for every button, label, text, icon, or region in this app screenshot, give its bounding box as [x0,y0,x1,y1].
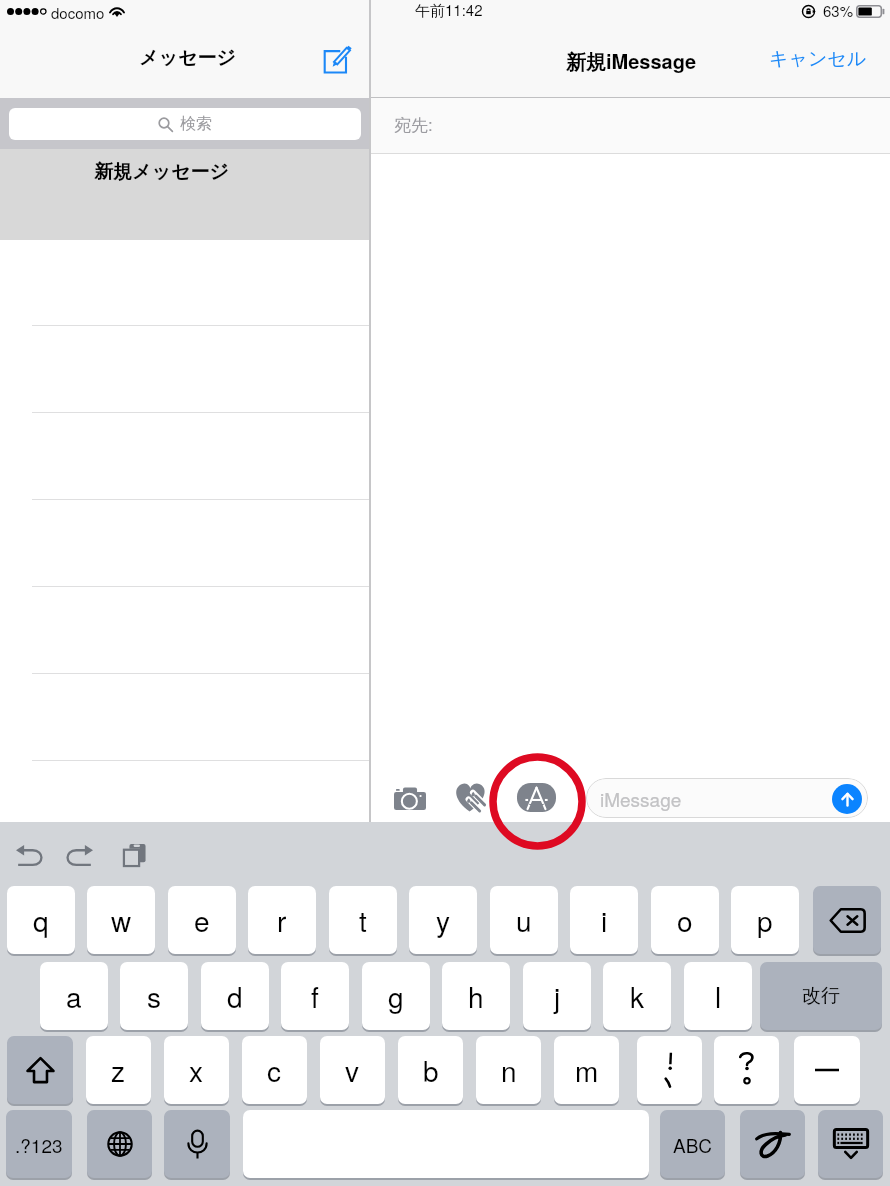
button[interactable]: j [523,962,591,1030]
button[interactable]: 検索 [9,108,361,140]
button[interactable]: o [651,886,719,954]
button[interactable]: Switch keyboard language [87,1110,152,1178]
button[interactable]: ABC [660,1110,725,1178]
button[interactable]: k [603,962,671,1030]
button[interactable]: Shift [7,1036,73,1104]
button[interactable]: Undo [7,836,51,874]
staticText: メッセージ [139,46,236,70]
staticText: x [189,1050,204,1090]
staticText: v [345,1050,360,1090]
button[interactable]: 改行 [760,962,882,1030]
button[interactable]: Exclamation mark [637,1036,702,1104]
staticText: k [630,976,645,1016]
button[interactable]: q [7,886,75,954]
button[interactable]: c [242,1036,307,1104]
staticText: 宛先: [394,111,433,136]
staticText: ABC [673,1131,713,1158]
button[interactable]: w [87,886,155,954]
button[interactable] [0,325,370,412]
button[interactable]: Redo [57,836,101,874]
button[interactable]: r [248,886,316,954]
button[interactable]: a [40,962,108,1030]
button[interactable]: Paste [112,835,156,875]
button[interactable]: f [281,962,349,1030]
staticText: l [715,976,722,1016]
button[interactable]: g [362,962,430,1030]
staticText: z [111,1050,126,1090]
staticText: e [194,900,210,940]
staticText: iMessage [600,785,682,812]
button[interactable]: p [731,886,799,954]
button[interactable]: Question mark [714,1036,779,1104]
staticText: 午前11:42 [415,0,483,21]
staticText: b [423,1050,439,1090]
staticText: .?123 [15,1131,63,1158]
button[interactable]: Send [832,784,862,814]
button[interactable]: h [442,962,510,1030]
button[interactable] [0,149,370,240]
button[interactable]: i [570,886,638,954]
button[interactable]: v [320,1036,385,1104]
staticText: docomo [51,2,105,23]
button[interactable]: u [490,886,558,954]
staticText: a [66,976,82,1016]
staticText: 63% [823,0,854,21]
staticText: キャンセル [769,47,867,71]
button[interactable]: Dictation [164,1110,230,1178]
staticText: c [267,1050,282,1090]
staticText: m [575,1050,599,1090]
button[interactable]: iMessage [586,778,868,818]
button[interactable]: y [409,886,477,954]
button[interactable]: Long vowel mark [794,1036,860,1104]
staticText: 新規メッセージ [94,160,229,184]
staticText: n [501,1050,517,1090]
button[interactable]: Backspace [813,886,881,954]
staticText: j [554,976,561,1016]
button[interactable]: l [684,962,752,1030]
button[interactable]: .?123 [6,1110,72,1178]
button[interactable]: m [554,1036,619,1104]
staticText: s [147,976,162,1016]
button[interactable]: n [476,1036,541,1104]
button[interactable] [0,499,370,586]
button[interactable]: b [398,1036,463,1104]
button[interactable]: Handwriting input [740,1110,805,1178]
staticText: y [436,900,451,940]
button[interactable] [0,673,370,760]
staticText: w [111,900,132,940]
button[interactable]: s [120,962,188,1030]
button[interactable]: New message [314,37,360,81]
staticText: 新規iMessage [566,46,697,75]
staticText: p [757,900,773,940]
staticText: d [227,976,243,1016]
staticText: t [359,900,367,940]
button[interactable]: Digital Touch [444,773,497,821]
button[interactable] [0,412,370,499]
staticText: i [601,900,608,940]
button[interactable] [0,760,370,822]
button[interactable]: App Store [510,773,563,821]
button[interactable]: Camera [384,773,436,821]
staticText: h [468,976,484,1016]
staticText: o [677,900,693,940]
button[interactable]: z [86,1036,151,1104]
staticText: q [33,900,49,940]
staticText: u [516,900,532,940]
button[interactable]: e [168,886,236,954]
staticText: f [311,976,319,1016]
staticText: 検索 [180,114,212,134]
button[interactable]: キャンセル [762,40,874,78]
button[interactable]: t [329,886,397,954]
staticText: r [277,900,287,940]
button[interactable]: d [201,962,269,1030]
staticText: 改行 [802,984,840,1008]
button[interactable] [0,586,370,673]
button[interactable]: Hide keyboard [818,1110,883,1178]
button[interactable]: x [164,1036,229,1104]
staticText: g [388,976,404,1016]
button[interactable] [370,98,890,153]
